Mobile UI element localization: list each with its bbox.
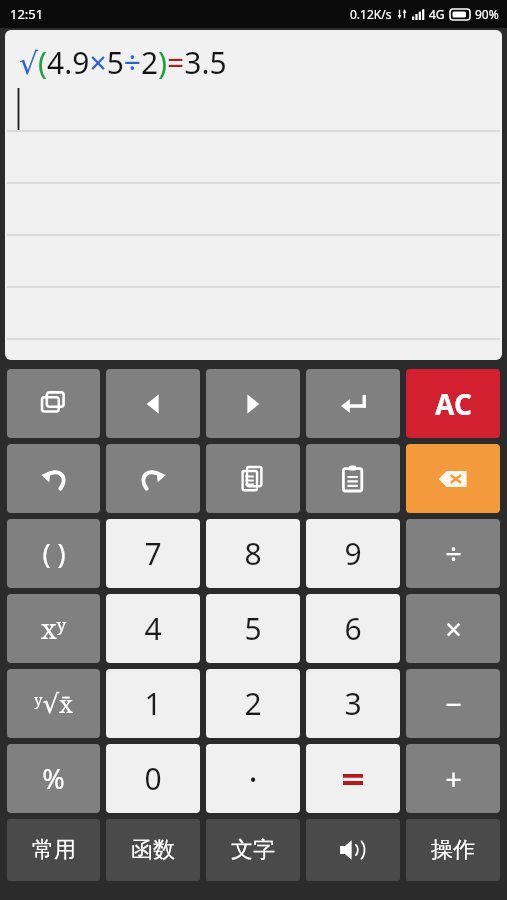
- button[interactable]: 文字: [206, 819, 300, 881]
- button[interactable]: History: [7, 369, 100, 438]
- button[interactable]: ·: [206, 744, 300, 813]
- button[interactable]: ( ): [7, 519, 100, 588]
- button[interactable]: −: [406, 669, 500, 738]
- button[interactable]: 常用: [7, 819, 100, 881]
- button[interactable]: y-th root of x: [7, 669, 100, 738]
- button[interactable]: Undo: [7, 444, 100, 513]
- button[interactable]: 4: [106, 594, 200, 663]
- button[interactable]: Copy: [206, 444, 300, 513]
- button[interactable]: Move right: [206, 369, 300, 438]
- staticText: 0.12K/s: [350, 6, 392, 22]
- staticText: 1: [144, 683, 162, 724]
- staticText: 6: [344, 608, 362, 649]
- staticText: 8: [244, 533, 262, 574]
- staticText: xy: [41, 610, 67, 647]
- staticText: 12:51: [10, 5, 44, 23]
- staticText: ·: [248, 756, 258, 802]
- staticText: 9: [344, 533, 362, 574]
- button[interactable]: Paste: [306, 444, 400, 513]
- staticText: ÷: [445, 534, 462, 573]
- button[interactable]: AC: [406, 369, 500, 438]
- button[interactable]: x to the power y: [7, 594, 100, 663]
- staticText: √(4.9×5÷2)=3.5: [19, 42, 227, 83]
- button[interactable]: 7: [106, 519, 200, 588]
- button[interactable]: Backspace: [406, 444, 500, 513]
- staticText: 4: [144, 608, 162, 649]
- staticText: −: [445, 684, 462, 723]
- staticText: AC: [435, 385, 472, 423]
- button[interactable]: 1: [106, 669, 200, 738]
- button[interactable]: Redo: [106, 444, 200, 513]
- button[interactable]: ×: [406, 594, 500, 663]
- staticText: ×: [445, 609, 462, 648]
- button[interactable]: 3: [306, 669, 400, 738]
- staticText: %: [42, 760, 65, 797]
- button[interactable]: New line: [306, 369, 400, 438]
- button[interactable]: 5: [206, 594, 300, 663]
- staticText: y√x̄: [34, 687, 73, 720]
- button[interactable]: 操作: [406, 819, 500, 881]
- staticText: 4G: [429, 6, 445, 22]
- button[interactable]: %: [7, 744, 100, 813]
- button[interactable]: Sound: [306, 819, 400, 881]
- staticText: +: [445, 759, 462, 798]
- button[interactable]: 0: [106, 744, 200, 813]
- button[interactable]: 函数: [106, 819, 200, 881]
- button[interactable]: 2: [206, 669, 300, 738]
- button[interactable]: +: [406, 744, 500, 813]
- button[interactable]: Equals: [306, 744, 400, 813]
- staticText: 文字: [231, 836, 275, 864]
- staticText: 90%: [475, 6, 499, 22]
- button[interactable]: 8: [206, 519, 300, 588]
- staticText: ( ): [42, 535, 66, 572]
- button[interactable]: Move left: [106, 369, 200, 438]
- staticText: 2: [244, 683, 262, 724]
- staticText: 0: [144, 758, 162, 799]
- staticText: 7: [144, 533, 162, 574]
- button[interactable]: 6: [306, 594, 400, 663]
- staticText: 5: [244, 608, 262, 649]
- staticText: 3: [344, 683, 362, 724]
- staticText: 函数: [131, 836, 175, 864]
- button[interactable]: ÷: [406, 519, 500, 588]
- button[interactable]: 9: [306, 519, 400, 588]
- staticText: 操作: [431, 836, 475, 864]
- staticText: 常用: [32, 836, 76, 864]
